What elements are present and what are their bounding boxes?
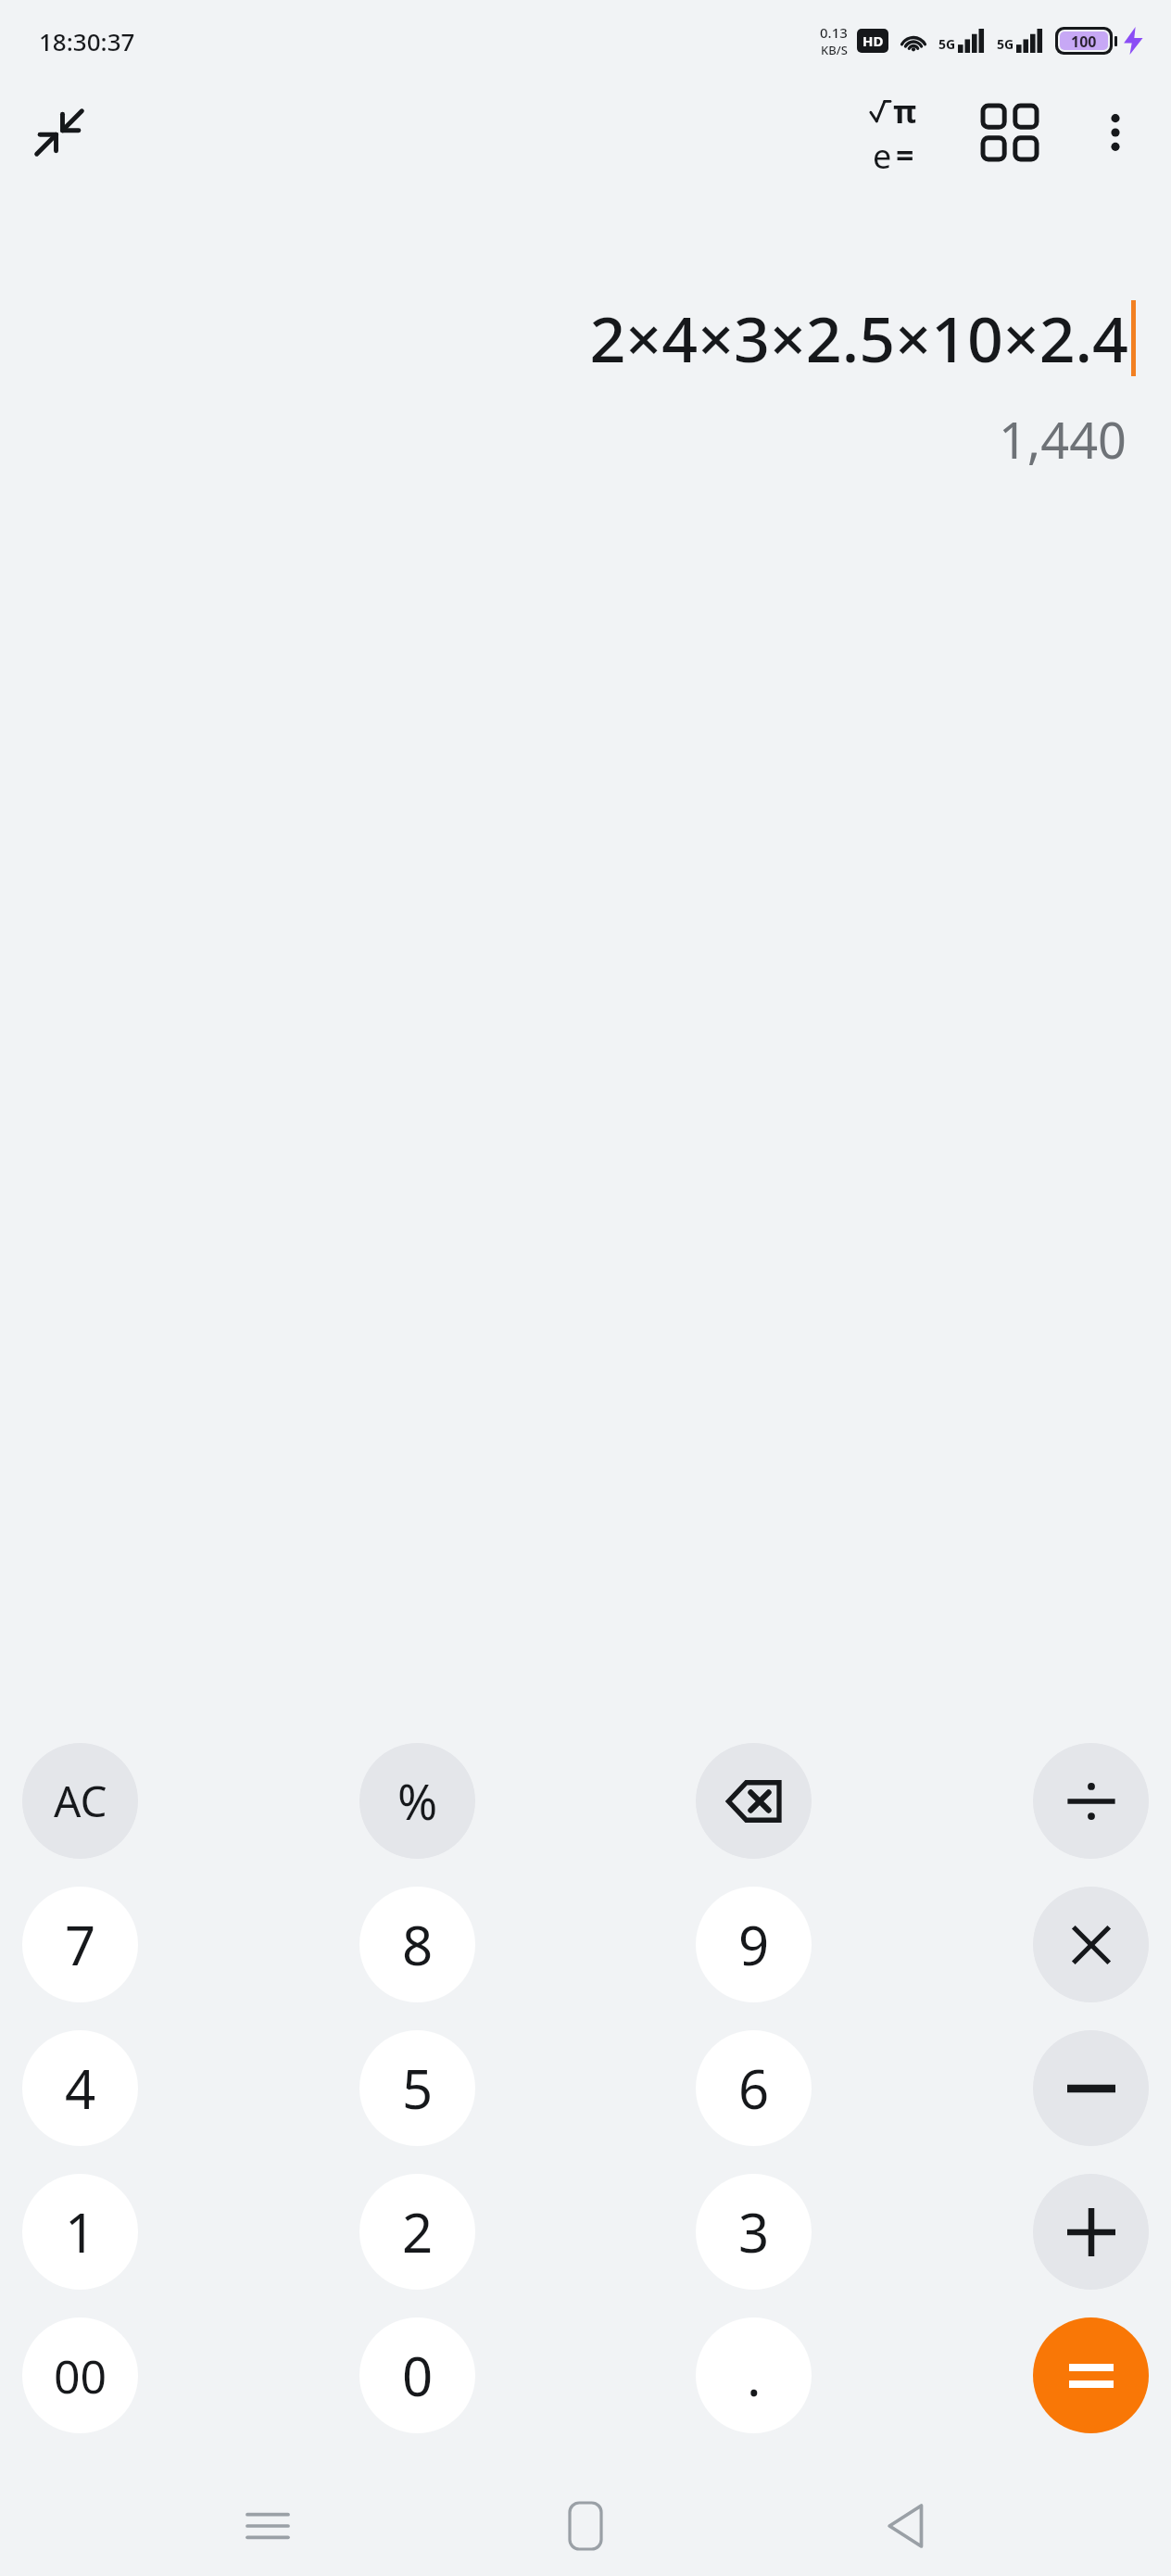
staticText: 0.13 <box>820 23 848 42</box>
button[interactable]: Equals <box>1033 2317 1149 2433</box>
staticText: 2 <box>402 2195 434 2268</box>
staticText: HD <box>863 32 884 50</box>
button[interactable]: Recents <box>217 2476 319 2576</box>
staticText: 1,440 <box>35 405 1127 474</box>
staticText: 5G <box>997 35 1014 53</box>
staticText: 0 <box>402 2339 434 2412</box>
button[interactable]: 8 <box>359 1887 475 2002</box>
button[interactable]: % <box>359 1743 475 1859</box>
button[interactable]: 7 <box>22 1887 138 2002</box>
button[interactable]: Converter <box>969 92 1051 173</box>
button[interactable]: 0 <box>359 2317 475 2433</box>
staticText: 100 <box>1071 32 1097 50</box>
staticText: . <box>747 2339 762 2412</box>
button[interactable]: 5 <box>359 2030 475 2146</box>
button[interactable]: 4 <box>22 2030 138 2146</box>
button[interactable]: Plus <box>1033 2174 1149 2290</box>
staticText: 3 <box>738 2195 770 2268</box>
button[interactable]: Home <box>535 2476 636 2576</box>
staticText: KB/S <box>821 42 848 58</box>
button[interactable]: 2 <box>359 2174 475 2290</box>
button[interactable]: Multiply <box>1033 1887 1149 2002</box>
staticText: 4 <box>65 2052 96 2125</box>
staticText: 7 <box>65 1908 96 1981</box>
staticText: 2×4×3×2.5×10×2.4 <box>589 295 1128 381</box>
button[interactable]: Divide <box>1033 1743 1149 1859</box>
staticText: = <box>896 133 914 175</box>
staticText: 6 <box>738 2052 770 2125</box>
button[interactable]: More options <box>1077 94 1154 171</box>
button[interactable]: 1 <box>22 2174 138 2290</box>
staticText: % <box>397 1768 438 1834</box>
staticText: 5G <box>938 35 956 53</box>
staticText: 5 <box>402 2052 434 2125</box>
staticText: e <box>873 133 892 175</box>
button[interactable]: Backspace <box>696 1743 812 1859</box>
button[interactable]: AC <box>22 1743 138 1859</box>
button[interactable]: 00 <box>22 2317 138 2433</box>
staticText: 18:30:37 <box>39 25 135 57</box>
staticText: π <box>893 90 917 133</box>
button[interactable]: Collapse <box>20 94 98 171</box>
button[interactable]: . <box>696 2317 812 2433</box>
button[interactable]: 3 <box>696 2174 812 2290</box>
staticText: 9 <box>738 1908 770 1981</box>
button[interactable]: Back <box>853 2476 955 2576</box>
staticText: AC <box>54 1772 107 1830</box>
staticText: 8 <box>402 1908 434 1981</box>
staticText: 1 <box>65 2195 96 2268</box>
button[interactable]: Scientific <box>850 90 936 175</box>
staticText: 00 <box>54 2344 107 2407</box>
button[interactable]: 6 <box>696 2030 812 2146</box>
button[interactable]: Minus <box>1033 2030 1149 2146</box>
button[interactable]: 9 <box>696 1887 812 2002</box>
